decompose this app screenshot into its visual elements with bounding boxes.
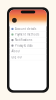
staticText: Notifications [15,38,32,42]
button[interactable]: Notifications [9,37,47,43]
button[interactable]: Payment methods [9,32,47,37]
button[interactable]: Privacy & data [9,43,47,48]
staticText: Payment methods [15,33,39,36]
staticText: Log out [11,55,22,59]
staticText: Account details [15,27,36,31]
button[interactable]: Account details [9,26,47,32]
staticText: Privacy & data [15,44,32,47]
button[interactable]: About [9,48,47,54]
button[interactable]: Profile [12,18,17,23]
staticText: About [11,49,20,53]
button[interactable]: Log out [9,54,47,60]
